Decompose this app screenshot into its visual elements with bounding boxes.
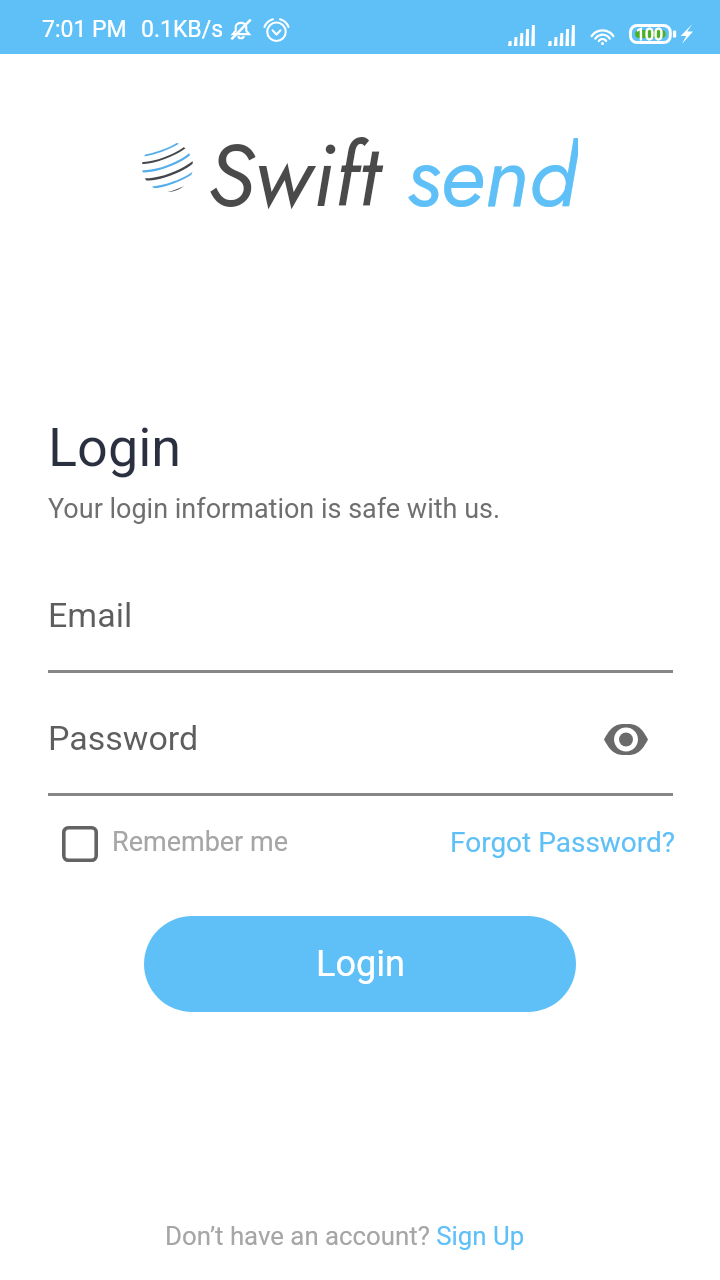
staticText: 7:01 PM	[42, 16, 127, 43]
button[interactable]: Login	[144, 916, 576, 1012]
staticText: 0.1KB/s	[141, 16, 224, 43]
button[interactable]: Don’t have an account? Sign Up	[165, 1221, 525, 1251]
staticText: Login	[316, 943, 405, 985]
staticText: Remember me	[112, 826, 288, 858]
staticText: 100	[636, 25, 663, 44]
staticText: Don’t have an account? Sign Up	[165, 1221, 525, 1251]
staticText: Your login information is safe with us.	[48, 493, 501, 525]
button[interactable]: Forgot Password?	[450, 826, 676, 859]
button[interactable]: Remember me	[62, 824, 288, 860]
button[interactable]: Show password	[596, 713, 656, 765]
staticText: Email	[48, 595, 133, 635]
staticText: Login	[48, 416, 182, 479]
staticText: Password	[48, 718, 199, 758]
staticText: Forgot Password?	[450, 826, 676, 859]
staticText: Swift send	[207, 112, 578, 232]
